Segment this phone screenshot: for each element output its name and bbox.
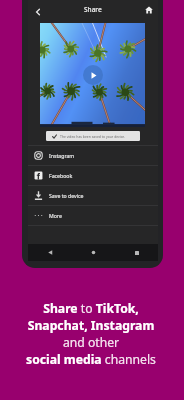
staticText: More <box>49 212 62 219</box>
button[interactable]: Back <box>30 4 45 19</box>
button[interactable]: Save to device <box>28 186 158 205</box>
staticText: Snapchat, Instagram <box>11 317 171 334</box>
staticText: and other <box>11 334 171 351</box>
staticText: Save to device <box>49 192 84 199</box>
staticText: Facebook <box>49 172 73 179</box>
button[interactable]: Instagram <box>28 146 158 165</box>
button[interactable]: More <box>28 206 158 225</box>
staticText: social media channels <box>11 351 171 368</box>
button[interactable]: Home <box>72 244 115 261</box>
staticText: Instagram <box>49 152 75 159</box>
staticText: Share to TikTok, <box>11 300 171 317</box>
button[interactable]: Home <box>141 2 156 17</box>
staticText: The video has been saved to your device. <box>60 134 126 139</box>
button[interactable]: Facebook <box>28 166 158 185</box>
button[interactable]: Back <box>28 244 72 261</box>
button[interactable]: Recent apps <box>115 244 158 261</box>
button[interactable]: Play video <box>83 65 103 85</box>
staticText: Share <box>84 5 102 14</box>
